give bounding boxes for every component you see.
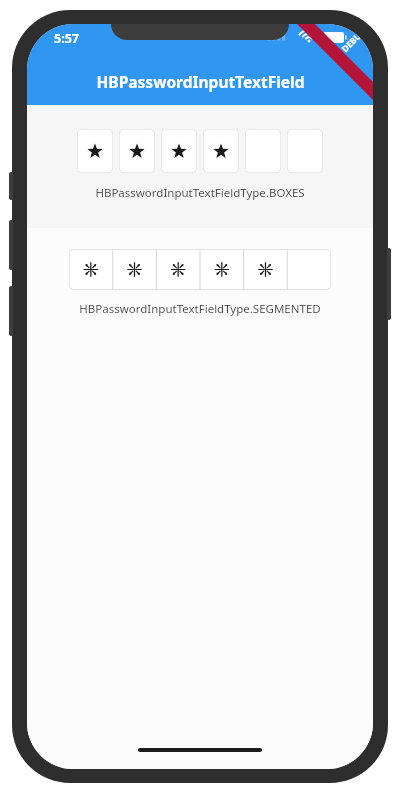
button[interactable]: Password digit 1 <box>77 129 113 173</box>
button[interactable]: Password digit 3 <box>161 129 197 173</box>
button[interactable]: Segmented password field <box>69 249 331 290</box>
button[interactable]: Password digit 2 <box>119 129 155 173</box>
button[interactable]: Password digit 6 <box>287 129 323 173</box>
button[interactable]: Password digit 4 <box>203 129 239 173</box>
staticText: 5:57 <box>54 30 79 47</box>
staticText: HBPasswordInputTextField <box>96 71 305 92</box>
staticText: HBPasswordInputTextFieldType.SEGMENTED <box>79 301 321 317</box>
staticText: HBPasswordInputTextFieldType.BOXES <box>95 185 305 201</box>
button[interactable]: Password digit 5 <box>245 129 281 173</box>
staticText: DEBUG <box>339 25 369 55</box>
